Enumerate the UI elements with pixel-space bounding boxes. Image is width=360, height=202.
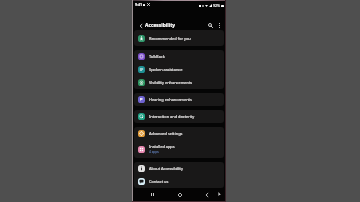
staticText: TalkBack	[149, 54, 165, 59]
staticText: About Accessibility	[149, 166, 183, 171]
button[interactable]: More options	[215, 21, 224, 30]
button[interactable]: Visibility enhancements	[134, 76, 224, 89]
staticText: 92%	[213, 3, 220, 8]
button[interactable]: Back	[202, 190, 211, 199]
button[interactable]: About Accessibility	[134, 162, 224, 175]
button[interactable]: Recommended for you	[134, 30, 224, 46]
staticText: 9:41	[135, 2, 143, 7]
button[interactable]: Hearing enhancements	[134, 93, 224, 106]
staticText: Contact us	[149, 179, 169, 184]
button[interactable]: Installed apps	[134, 140, 224, 158]
button[interactable]: Spoken assistance	[134, 63, 224, 76]
button[interactable]: Advanced settings	[134, 127, 224, 140]
button[interactable]: Pointer	[215, 190, 223, 198]
staticText: Hearing enhancements	[149, 97, 192, 102]
staticText: Spoken assistance	[149, 67, 183, 72]
staticText: Visibility enhancements	[149, 80, 193, 85]
button[interactable]: Recent apps	[148, 190, 157, 199]
staticText: 4 apps	[149, 150, 159, 154]
button[interactable]: Interaction and dexterity	[134, 110, 224, 123]
button[interactable]: Contact us	[134, 175, 224, 188]
button[interactable]: Search	[206, 21, 215, 30]
button[interactable]: Navigate up	[136, 21, 145, 30]
staticText: Advanced settings	[149, 131, 183, 136]
staticText: Installed apps	[149, 144, 175, 149]
button[interactable]: Home	[175, 190, 184, 199]
button[interactable]: TalkBack	[134, 50, 224, 63]
staticText: Recommended for you	[149, 36, 191, 41]
staticText: Accessibility	[145, 22, 176, 29]
staticText: Interaction and dexterity	[149, 114, 195, 119]
